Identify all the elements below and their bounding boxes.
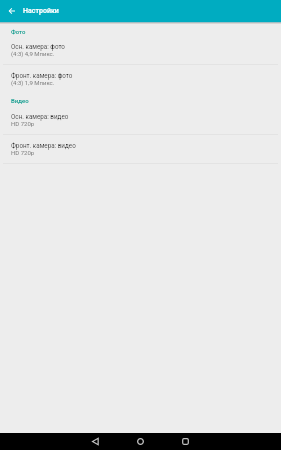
staticText: (4:3) 1,9 Мпикс. <box>11 79 55 86</box>
staticText: HD 720p <box>11 149 35 156</box>
staticText: Осн. камера: видео <box>11 113 69 120</box>
button[interactable]: Назад <box>81 433 110 450</box>
staticText: Фото <box>11 28 26 35</box>
staticText: Настройки <box>23 6 59 14</box>
button[interactable]: Осн. камера: фото <box>0 36 281 64</box>
button[interactable]: Фронт. камера: фото <box>0 65 281 93</box>
button[interactable]: Обзор <box>171 433 200 450</box>
staticText: (4:3) 4,9 Мпикс. <box>11 50 55 57</box>
staticText: Видео <box>11 97 29 104</box>
staticText: Фронт. камера: видео <box>11 142 76 149</box>
staticText: Осн. камера: фото <box>11 43 65 50</box>
button[interactable]: Назад <box>0 0 23 22</box>
button[interactable]: Осн. камера: видео <box>0 106 281 134</box>
staticText: HD 720p <box>11 120 35 127</box>
button[interactable]: Главный экран <box>126 433 155 450</box>
staticText: Фронт. камера: фото <box>11 72 73 79</box>
button[interactable]: Фронт. камера: видео <box>0 135 281 163</box>
